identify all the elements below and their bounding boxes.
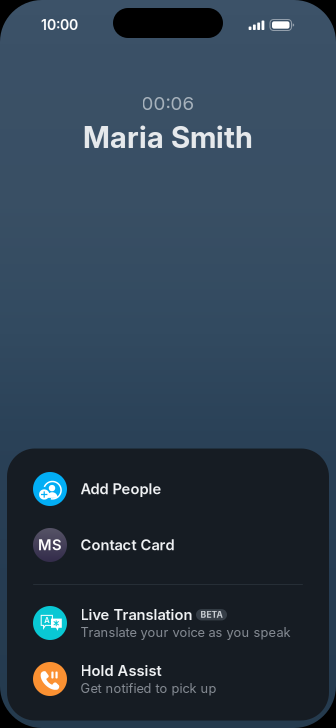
staticText: 10:00	[41, 16, 78, 33]
staticText: Live Translation	[80, 606, 192, 624]
staticText: Translate your voice as you speak	[80, 625, 290, 640]
staticText: Maria Smith	[83, 120, 253, 155]
staticText: Hold Assist	[80, 662, 161, 680]
button[interactable]: Add People	[7, 461, 329, 517]
button[interactable]: MS	[7, 517, 329, 573]
staticText: Get notified to pick up	[80, 681, 216, 696]
staticText: MS	[38, 536, 62, 554]
button[interactable]: Hold Assist	[7, 651, 329, 707]
staticText: Contact Card	[80, 536, 174, 554]
staticText: BETA	[200, 610, 222, 620]
staticText: A	[44, 616, 49, 625]
staticText: 00:06	[141, 92, 194, 115]
staticText: Add People	[80, 480, 161, 498]
button[interactable]: A	[7, 595, 329, 651]
